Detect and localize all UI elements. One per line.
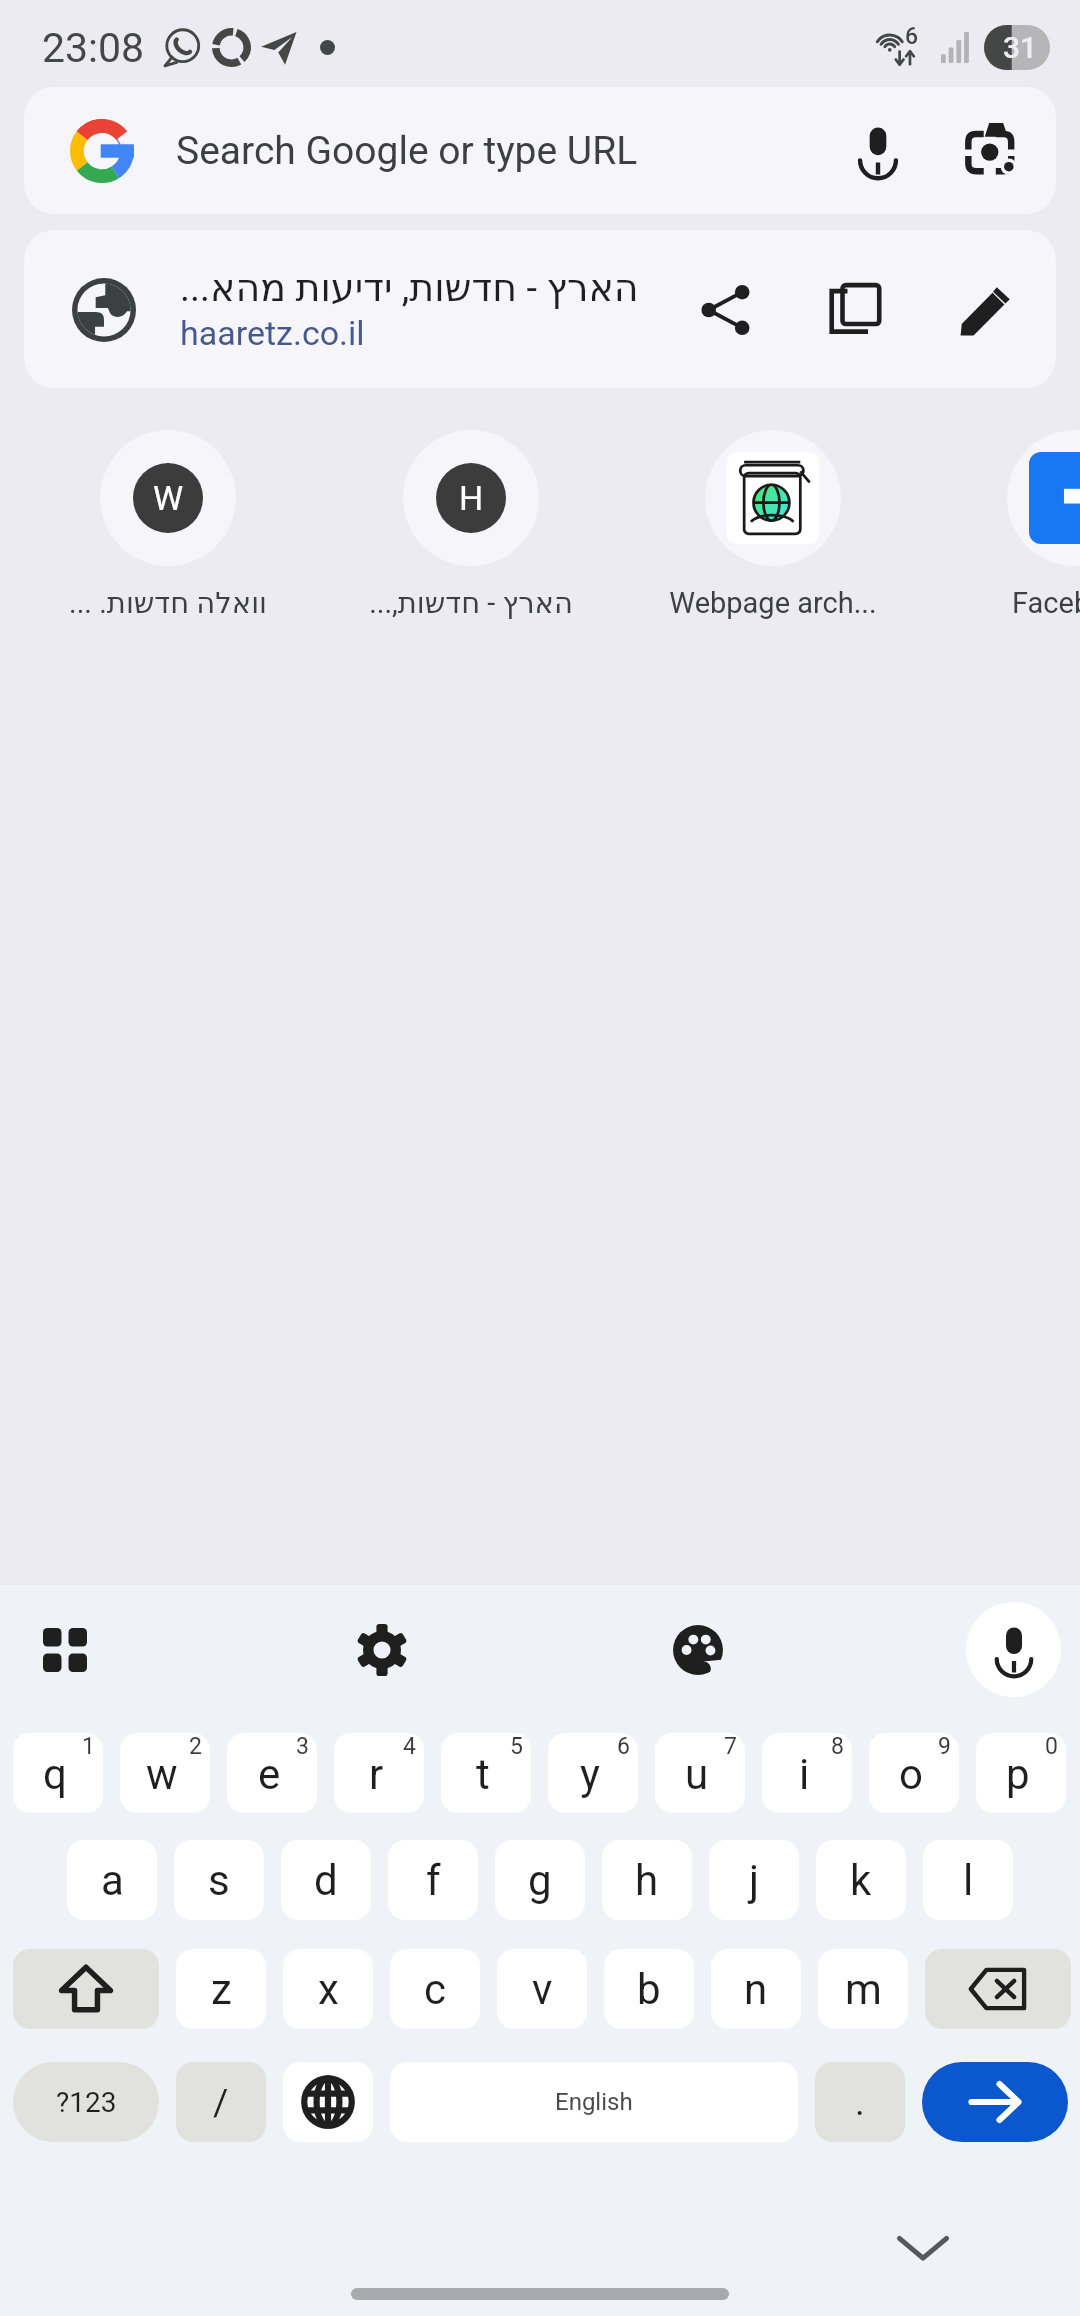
button[interactable]: c (390, 1949, 480, 2029)
button[interactable]: Hide keyboard (887, 2211, 959, 2283)
staticText: n (744, 1965, 768, 2014)
button[interactable]: e (227, 1733, 317, 1813)
button[interactable]: Share (692, 276, 760, 344)
staticText: 31 (1003, 30, 1038, 65)
staticText: . (855, 2081, 865, 2124)
button[interactable]: / (176, 2062, 266, 2142)
staticText: 8 (831, 1733, 844, 1760)
staticText: f (426, 1856, 441, 1905)
staticText: l (963, 1856, 974, 1905)
button[interactable]: Settings (334, 1602, 429, 1697)
button[interactable]: g (495, 1840, 585, 1920)
button[interactable]: u (655, 1733, 745, 1813)
button[interactable]: . (815, 2062, 905, 2142)
button[interactable]: Go (922, 2062, 1068, 2142)
staticText: d (314, 1856, 338, 1905)
staticText: ‫הארץ - חדשות,... (369, 586, 573, 620)
staticText: 7 (724, 1733, 737, 1760)
staticText: 23:08 (42, 24, 145, 72)
staticText: w (146, 1750, 178, 1799)
button[interactable]: d (281, 1840, 371, 1920)
button[interactable]: W (17, 420, 319, 625)
button[interactable]: s (174, 1840, 264, 1920)
button[interactable]: H (320, 420, 622, 625)
staticText: 2 (189, 1733, 202, 1760)
staticText: j (749, 1856, 760, 1905)
staticText: h (635, 1856, 659, 1905)
staticText: ‫הארץ - חדשות, ידיעות מהא... (180, 266, 639, 311)
button[interactable]: Shift (13, 1949, 159, 2029)
staticText: 9 (938, 1733, 951, 1760)
staticText: 0 (1045, 1733, 1058, 1760)
button[interactable]: l (923, 1840, 1013, 1920)
staticText: z (211, 1965, 232, 2014)
staticText: c (424, 1965, 446, 2014)
button[interactable]: Search Google or type URL (24, 87, 1056, 214)
button[interactable]: r (334, 1733, 424, 1813)
button[interactable]: Copy (822, 276, 890, 344)
button[interactable]: Voice search (848, 121, 908, 181)
staticText: 3 (296, 1733, 309, 1760)
staticText: 4 (403, 1733, 416, 1760)
staticText: 1 (82, 1733, 95, 1760)
button[interactable]: k (816, 1840, 906, 1920)
button[interactable]: m (818, 1949, 908, 2029)
staticText: 6 (617, 1733, 630, 1760)
staticText: English (555, 2088, 633, 2116)
button[interactable]: j (709, 1840, 799, 1920)
button[interactable]: Webpage arch... (622, 420, 924, 625)
button[interactable]: o (869, 1733, 959, 1813)
button[interactable]: ?123 (13, 2062, 159, 2142)
button[interactable]: Google Lens (962, 121, 1022, 181)
staticText: a (101, 1856, 124, 1905)
button[interactable]: b (604, 1949, 694, 2029)
staticText: H (459, 478, 484, 518)
staticText: e (258, 1750, 281, 1799)
button[interactable]: English (390, 2062, 798, 2142)
staticText: r (369, 1750, 384, 1799)
staticText: s (208, 1856, 230, 1905)
staticText: 6 (905, 23, 919, 50)
staticText: x (318, 1965, 339, 2014)
button[interactable]: x (283, 1949, 373, 2029)
button[interactable]: n (711, 1949, 801, 2029)
staticText: k (850, 1856, 872, 1905)
button[interactable]: Facebook (924, 420, 1080, 625)
staticText: 5 (510, 1733, 523, 1760)
button[interactable]: p (976, 1733, 1066, 1813)
staticText: Webpage arch... (669, 586, 877, 620)
staticText: m (845, 1965, 882, 2014)
staticText: o (899, 1750, 923, 1799)
button[interactable]: Change language (283, 2062, 373, 2142)
staticText: ‫וואלה חדשות. ... (69, 586, 267, 620)
button[interactable]: w (120, 1733, 210, 1813)
button[interactable]: Apps (17, 1602, 112, 1697)
staticText: / (213, 2081, 229, 2124)
button[interactable]: Edit (952, 276, 1020, 344)
staticText: q (43, 1750, 67, 1799)
button[interactable]: h (602, 1840, 692, 1920)
staticText: haaretz.co.il (180, 313, 365, 353)
button[interactable]: ‫הארץ - חדשות, ידיעות מהא... (24, 230, 1056, 388)
button[interactable]: q (13, 1733, 103, 1813)
button[interactable]: v (497, 1949, 587, 2029)
button[interactable]: Backspace (925, 1949, 1071, 2029)
staticText: g (528, 1856, 552, 1905)
staticText: b (637, 1965, 661, 2014)
button[interactable]: Theme (650, 1602, 745, 1697)
staticText: Search Google or type URL (176, 128, 638, 174)
button[interactable]: t (441, 1733, 531, 1813)
button[interactable]: f (388, 1840, 478, 1920)
staticText: W (153, 478, 184, 518)
button[interactable]: a (67, 1840, 157, 1920)
button[interactable]: z (176, 1949, 266, 2029)
button[interactable]: i (762, 1733, 852, 1813)
button[interactable]: y (548, 1733, 638, 1813)
staticText: y (580, 1750, 600, 1799)
staticText: p (1006, 1750, 1030, 1799)
staticText: ?123 (56, 2086, 117, 2119)
button[interactable]: Voice input (966, 1602, 1061, 1697)
staticText: i (799, 1750, 810, 1799)
staticText: u (685, 1750, 709, 1799)
staticText: t (476, 1750, 490, 1799)
